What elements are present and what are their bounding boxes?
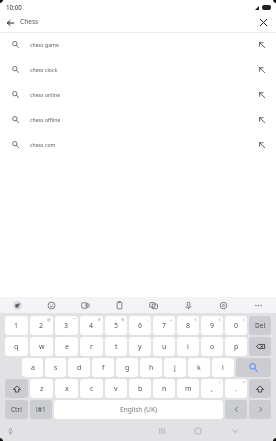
button[interactable]: x <box>55 379 78 398</box>
button[interactable]: chess clock <box>0 57 276 82</box>
button[interactable]: Stickers <box>68 297 102 313</box>
button[interactable]: Home <box>189 422 207 440</box>
staticText: 6 <box>138 321 143 331</box>
button[interactable]: 6 <box>129 316 151 335</box>
staticText: c <box>90 384 94 394</box>
button[interactable]: s <box>45 358 66 377</box>
staticText: 7 <box>162 321 167 331</box>
button[interactable]: 2 <box>30 316 53 335</box>
button[interactable]: c <box>80 379 103 398</box>
staticText: 3 <box>64 321 69 331</box>
button[interactable]: chess offline <box>0 107 276 132</box>
button[interactable]: y <box>129 337 151 356</box>
button[interactable]: o <box>201 337 223 356</box>
staticText: t <box>115 342 118 352</box>
button[interactable]: 7 <box>153 316 175 335</box>
staticText: m <box>185 384 192 394</box>
staticText: p <box>234 342 239 352</box>
button[interactable]: e <box>55 337 78 356</box>
staticText: a <box>31 363 35 373</box>
button[interactable]: Google search <box>0 297 34 313</box>
button[interactable]: Back <box>226 422 244 440</box>
button[interactable]: g <box>116 358 138 377</box>
button[interactable]: z <box>30 379 53 398</box>
button[interactable]: Insert suggestion <box>248 57 276 82</box>
button[interactable]: Ctrl <box>5 400 28 419</box>
button[interactable]: 1 <box>5 316 28 335</box>
button[interactable]: 3 <box>55 316 78 335</box>
button[interactable]: . <box>225 379 247 398</box>
button[interactable]: d <box>68 358 90 377</box>
button[interactable]: Del <box>249 316 271 335</box>
staticText: English (UK) <box>120 405 158 414</box>
staticText: h <box>149 363 154 373</box>
staticText: ) <box>219 317 221 322</box>
staticText: !#1 <box>36 405 46 414</box>
button[interactable]: l <box>212 358 234 377</box>
button[interactable]: p <box>225 337 247 356</box>
button[interactable]: Previous <box>225 400 247 419</box>
button[interactable]: 5 <box>105 316 127 335</box>
button[interactable]: Insert suggestion <box>248 32 276 57</box>
button[interactable]: f <box>92 358 114 377</box>
button[interactable]: t <box>105 337 127 356</box>
button[interactable]: Shift <box>5 379 28 398</box>
button[interactable]: b <box>129 379 151 398</box>
button[interactable]: Back <box>0 14 20 31</box>
button[interactable]: j <box>164 358 186 377</box>
button[interactable]: 4 <box>80 316 103 335</box>
button[interactable]: English (UK) <box>54 400 223 419</box>
button[interactable]: r <box>80 337 103 356</box>
staticText: g <box>125 363 130 373</box>
button[interactable]: u <box>153 337 175 356</box>
button[interactable]: Search <box>236 358 271 377</box>
button[interactable]: Clear search <box>252 14 274 31</box>
staticText: Del <box>255 321 266 330</box>
button[interactable]: Clipboard <box>102 297 136 313</box>
staticText: % <box>121 317 125 322</box>
button[interactable]: Insert suggestion <box>248 107 276 132</box>
staticText: chess game <box>30 41 59 48</box>
button[interactable]: chess com <box>0 132 276 157</box>
button[interactable]: Next <box>249 400 271 419</box>
button[interactable]: Shift <box>249 379 271 398</box>
button[interactable]: , <box>201 379 223 398</box>
staticText: 4 <box>89 321 94 331</box>
button[interactable]: Translate <box>136 297 171 313</box>
button[interactable]: 9 <box>201 316 223 335</box>
button[interactable]: 0 <box>225 316 247 335</box>
button[interactable]: n <box>153 379 175 398</box>
button[interactable]: k <box>188 358 210 377</box>
staticText: y <box>138 342 142 352</box>
button[interactable]: More options <box>241 297 276 313</box>
button[interactable]: chess online <box>0 82 276 107</box>
staticText: z <box>40 384 44 394</box>
staticText: 10:00 <box>6 3 22 11</box>
button[interactable]: q <box>5 337 28 356</box>
staticText: b <box>138 384 143 394</box>
button[interactable]: a <box>22 358 43 377</box>
button[interactable]: Voice typing <box>171 297 206 313</box>
button[interactable]: chess game <box>0 32 276 57</box>
staticText: o <box>210 342 215 352</box>
staticText: ? <box>243 380 245 385</box>
button[interactable]: 8 <box>177 316 199 335</box>
button[interactable]: Settings <box>206 297 241 313</box>
button[interactable]: m <box>177 379 199 398</box>
staticText: n <box>162 384 167 394</box>
button[interactable]: Emoji <box>34 297 68 313</box>
staticText: . <box>235 384 237 394</box>
button[interactable]: Insert suggestion <box>248 132 276 157</box>
staticText: r <box>90 342 93 352</box>
button[interactable]: h <box>140 358 162 377</box>
button[interactable]: w <box>30 337 53 356</box>
button[interactable]: v <box>105 379 127 398</box>
staticText: 5 <box>114 321 119 331</box>
button[interactable]: !#1 <box>30 400 52 419</box>
staticText: w <box>39 342 45 352</box>
button[interactable]: Voice input <box>3 423 17 439</box>
button[interactable]: i <box>177 337 199 356</box>
button[interactable]: Backspace <box>249 337 271 356</box>
button[interactable]: Insert suggestion <box>248 82 276 107</box>
button[interactable]: Recent apps <box>153 422 171 440</box>
